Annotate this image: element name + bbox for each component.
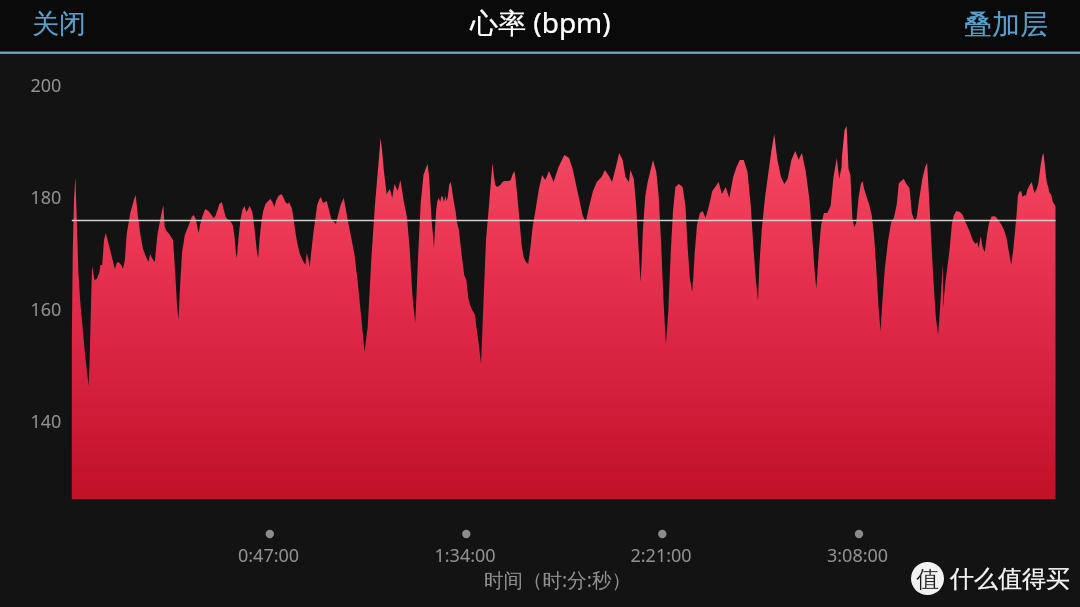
button[interactable]: 叠加层 [951, 0, 1061, 52]
staticText: 叠加层 [964, 7, 1048, 42]
button[interactable]: 关闭 [19, 0, 99, 51]
staticText: 关闭 [32, 7, 86, 41]
